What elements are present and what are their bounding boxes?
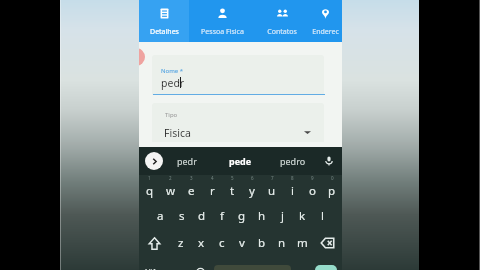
button[interactable]: More suggestions	[145, 152, 163, 170]
button[interactable]: Shift	[139, 229, 170, 257]
button[interactable]: pedr	[163, 147, 210, 175]
staticText: 4	[211, 175, 214, 181]
staticText: l	[321, 208, 324, 224]
staticText: r	[210, 183, 215, 199]
button[interactable]: 8	[282, 174, 302, 202]
button[interactable]: 1	[139, 174, 160, 202]
button[interactable]: Symbols	[139, 258, 162, 270]
button[interactable]: n	[272, 229, 292, 257]
staticText: m	[297, 235, 308, 251]
staticText: 9	[311, 175, 314, 181]
staticText: o	[309, 183, 316, 199]
button[interactable]: d	[192, 202, 212, 230]
staticText: u	[268, 183, 276, 199]
staticText: c	[219, 235, 225, 251]
button[interactable]: Pessoa Fisica	[189, 0, 256, 42]
staticText: pedro	[280, 155, 306, 167]
staticText: b	[258, 235, 266, 251]
button[interactable]: 7	[262, 174, 282, 202]
staticText: x	[198, 235, 205, 251]
staticText: 2	[169, 175, 172, 181]
staticText: Detalhes	[150, 27, 179, 37]
staticText: g	[238, 208, 246, 224]
button[interactable]: 4	[202, 174, 222, 202]
staticText: Pessoa Fisica	[201, 27, 244, 37]
button[interactable]: Contatos	[256, 0, 308, 42]
button[interactable]: m	[292, 229, 312, 257]
button[interactable]: 9	[302, 174, 322, 202]
button[interactable]: k	[292, 202, 312, 230]
button[interactable]: j	[272, 202, 292, 230]
button[interactable]: Open dropdown	[302, 127, 313, 138]
staticText: n	[278, 235, 286, 251]
staticText: 5	[231, 175, 234, 181]
staticText: 1	[148, 175, 151, 181]
staticText: 8	[291, 175, 294, 181]
button[interactable]: s	[171, 202, 192, 230]
button[interactable]: f	[212, 202, 232, 230]
staticText: i	[291, 183, 294, 199]
button[interactable]: Voice input	[315, 147, 342, 175]
button[interactable]: Emoji	[190, 258, 210, 270]
button[interactable]: 0	[322, 174, 342, 202]
staticText: !#1	[145, 267, 157, 270]
staticText: pedr	[161, 76, 185, 90]
button[interactable]: Backspace	[312, 229, 342, 257]
staticText: Tipo	[165, 111, 178, 119]
button[interactable]: v	[232, 229, 252, 257]
button[interactable]: Detalhes	[139, 0, 189, 42]
staticText: q	[146, 183, 154, 199]
button[interactable]: Enter	[315, 265, 337, 270]
button[interactable]: c	[212, 229, 232, 257]
button[interactable]: a	[150, 202, 171, 230]
button[interactable]: Enderec	[308, 0, 342, 42]
staticText: w	[166, 183, 176, 199]
staticText: j	[281, 208, 284, 224]
staticText: k	[299, 208, 306, 224]
staticText: Enderec	[312, 27, 339, 37]
button[interactable]: g	[232, 202, 252, 230]
button[interactable]: l	[312, 202, 332, 230]
button[interactable]: 6	[242, 174, 262, 202]
staticText: f	[220, 208, 224, 224]
staticText: d	[198, 208, 206, 224]
staticText: p	[328, 183, 336, 199]
staticText: 6	[251, 175, 254, 181]
button[interactable]: pedro	[271, 147, 315, 175]
button[interactable]: b	[252, 229, 272, 257]
staticText: 0	[331, 175, 334, 181]
staticText: pede	[229, 155, 252, 167]
staticText: t	[230, 183, 235, 199]
staticText: h	[258, 208, 266, 224]
staticText: y	[249, 183, 255, 199]
staticText: 3	[190, 175, 193, 181]
staticText: v	[239, 235, 245, 251]
staticText: Nome *	[161, 67, 184, 75]
button[interactable]: z	[170, 229, 191, 257]
staticText: z	[178, 235, 184, 251]
button[interactable]: x	[191, 229, 212, 257]
staticText: pedr	[177, 155, 197, 167]
button[interactable]: 5	[222, 174, 242, 202]
staticText: 7	[271, 175, 274, 181]
button[interactable]: h	[252, 202, 272, 230]
button[interactable]: pede	[210, 147, 271, 175]
staticText: Contatos	[267, 27, 297, 37]
button[interactable]: 2	[160, 174, 181, 202]
button[interactable]: 3	[181, 174, 202, 202]
staticText: e	[188, 183, 195, 199]
staticText: Fisica	[164, 126, 191, 140]
staticText: a	[157, 208, 164, 224]
staticText: s	[179, 208, 185, 224]
